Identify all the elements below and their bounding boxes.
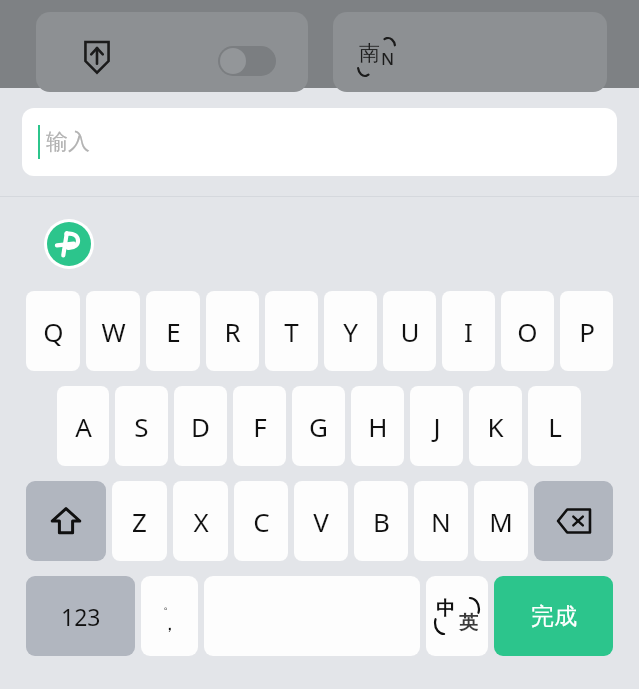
staticText: J bbox=[433, 409, 441, 444]
staticText: Z bbox=[132, 504, 147, 539]
staticText: X bbox=[193, 504, 209, 539]
staticText: E bbox=[166, 314, 181, 349]
staticText: I bbox=[464, 314, 473, 349]
staticText: 中 bbox=[436, 597, 455, 621]
staticText: 南 bbox=[359, 40, 380, 66]
button[interactable]: J bbox=[410, 386, 463, 466]
button[interactable]: 。 bbox=[141, 576, 198, 656]
button[interactable]: T bbox=[265, 291, 318, 371]
button[interactable]: Toggle bbox=[218, 46, 276, 76]
button[interactable]: 南 bbox=[333, 12, 607, 92]
staticText: D bbox=[191, 409, 210, 444]
staticText: T bbox=[284, 314, 299, 349]
button[interactable]: W bbox=[86, 291, 140, 371]
staticText: ， bbox=[160, 612, 179, 636]
button[interactable]: S bbox=[115, 386, 168, 466]
staticText: Y bbox=[343, 314, 358, 349]
button[interactable]: Q bbox=[26, 291, 80, 371]
button[interactable]: V bbox=[294, 481, 348, 561]
button[interactable]: O bbox=[501, 291, 554, 371]
button[interactable]: X bbox=[173, 481, 228, 561]
button[interactable]: C bbox=[234, 481, 288, 561]
staticText: 完成 bbox=[531, 602, 577, 631]
button[interactable]: Shift bbox=[26, 481, 106, 561]
staticText: F bbox=[253, 409, 267, 444]
button[interactable]: D bbox=[174, 386, 227, 466]
button[interactable]: H bbox=[351, 386, 404, 466]
button[interactable]: Switch Chinese English bbox=[426, 576, 488, 656]
staticText: 英 bbox=[459, 611, 478, 635]
button[interactable]: Upload bbox=[36, 12, 308, 92]
staticText: P bbox=[579, 314, 595, 349]
button[interactable]: 完成 bbox=[494, 576, 613, 656]
button[interactable]: P bbox=[560, 291, 613, 371]
button[interactable]: K bbox=[469, 386, 522, 466]
staticText: V bbox=[313, 504, 329, 539]
button[interactable]: M bbox=[474, 481, 528, 561]
button[interactable]: N bbox=[414, 481, 468, 561]
button[interactable]: I bbox=[442, 291, 495, 371]
button[interactable]: Backspace bbox=[534, 481, 613, 561]
staticText: M bbox=[489, 504, 513, 539]
staticText: K bbox=[487, 409, 504, 444]
button[interactable]: R bbox=[206, 291, 259, 371]
button[interactable]: 输入 bbox=[22, 108, 617, 176]
staticText: 输入 bbox=[46, 128, 90, 156]
staticText: C bbox=[253, 504, 270, 539]
button[interactable]: B bbox=[354, 481, 408, 561]
staticText: U bbox=[400, 314, 420, 349]
staticText: W bbox=[101, 314, 126, 349]
staticText: N bbox=[381, 47, 395, 70]
staticText: B bbox=[373, 504, 390, 539]
button[interactable]: G bbox=[292, 386, 345, 466]
button[interactable]: Input method logo bbox=[44, 219, 94, 269]
staticText: H bbox=[368, 409, 388, 444]
staticText: R bbox=[224, 314, 241, 349]
button[interactable]: Y bbox=[324, 291, 377, 371]
button[interactable]: 123 bbox=[26, 576, 135, 656]
button[interactable]: F bbox=[233, 386, 286, 466]
staticText: N bbox=[431, 504, 451, 539]
other: Upload bbox=[80, 40, 114, 74]
staticText: 123 bbox=[61, 601, 101, 632]
staticText: 。 bbox=[163, 596, 176, 612]
staticText: S bbox=[134, 409, 149, 444]
staticText: O bbox=[517, 314, 538, 349]
button[interactable]: A bbox=[57, 386, 109, 466]
staticText: L bbox=[548, 409, 562, 444]
button[interactable]: Z bbox=[112, 481, 167, 561]
button[interactable]: E bbox=[146, 291, 200, 371]
staticText: Q bbox=[43, 314, 64, 349]
button[interactable]: L bbox=[528, 386, 581, 466]
button[interactable]: U bbox=[383, 291, 436, 371]
staticText: G bbox=[309, 409, 328, 444]
staticText: A bbox=[75, 409, 92, 444]
